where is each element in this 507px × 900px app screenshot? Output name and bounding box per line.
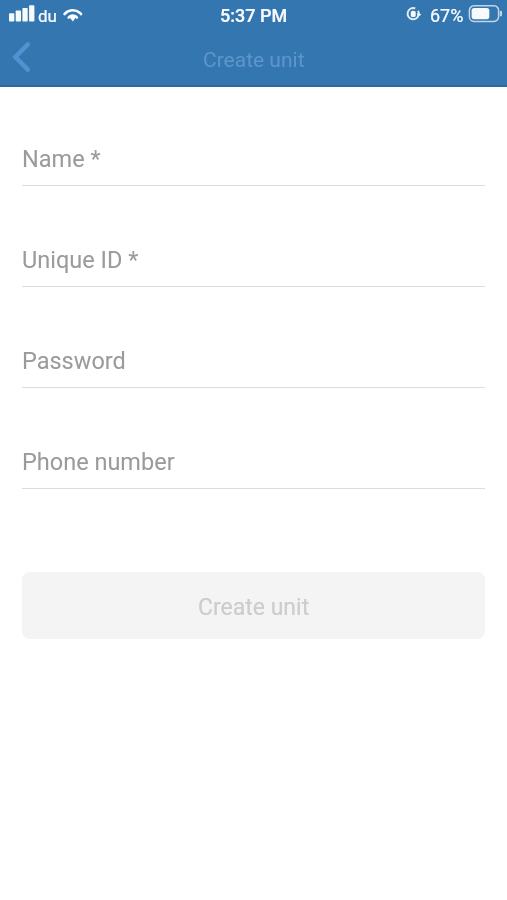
staticText: Name * <box>22 145 101 173</box>
button[interactable]: Password <box>22 323 485 424</box>
staticText: du <box>38 6 57 26</box>
button[interactable]: Create unit <box>22 572 485 639</box>
button[interactable]: Unique ID * <box>22 222 485 323</box>
staticText: Unique ID * <box>22 246 139 274</box>
button[interactable]: Phone number <box>22 424 485 525</box>
staticText: Phone number <box>22 448 175 476</box>
staticText: 5:37 PM <box>220 5 288 26</box>
staticText: Create unit <box>198 594 310 621</box>
button[interactable]: Back <box>0 29 46 85</box>
staticText: Create unit <box>203 48 305 73</box>
button[interactable]: Name * <box>22 121 485 222</box>
staticText: Password <box>22 347 126 375</box>
staticText: 67% <box>430 5 464 26</box>
